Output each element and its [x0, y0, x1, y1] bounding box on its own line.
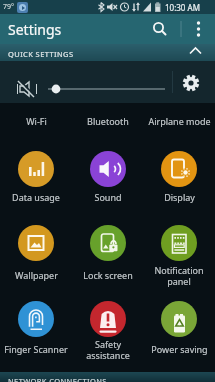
button[interactable]: Power saving [143, 301, 215, 362]
staticText: Wallpaper [15, 269, 58, 281]
staticText: Airplane mode [148, 115, 211, 127]
button[interactable]: Display [143, 151, 215, 210]
staticText: Data usage [12, 191, 60, 203]
staticText: Sound [94, 191, 122, 203]
button[interactable]: Wallpaper [0, 225, 72, 288]
button[interactable]: Sound [72, 151, 144, 210]
staticText: Lock screen [83, 269, 133, 281]
button[interactable]: Finger Scanner [0, 301, 72, 362]
staticText: Settings [8, 20, 62, 39]
button[interactable]: Data usage [0, 151, 72, 210]
staticText: Power saving [151, 343, 208, 355]
button[interactable] [186, 14, 210, 44]
button[interactable]: Wi-Fi [0, 110, 72, 132]
staticText: Finger Scanner [4, 343, 68, 355]
button[interactable]: Bluetooth [72, 110, 144, 132]
button[interactable]: NETWORK CONNECTIONS [0, 372, 215, 382]
button[interactable] [178, 70, 204, 96]
staticText: QUICK SETTINGS [8, 49, 74, 59]
staticText: NETWORK CONNECTIONS [8, 376, 107, 382]
button[interactable]: Safety assistance [72, 301, 144, 362]
staticText: Wi-Fi [26, 115, 47, 127]
button[interactable]: Lock screen [72, 225, 144, 288]
staticText: Bluetooth [87, 115, 129, 127]
button[interactable]: QUICK SETTINGS [0, 44, 215, 61]
button[interactable] [146, 14, 174, 44]
button[interactable]: Notification panel [143, 225, 215, 288]
staticText: Notification panel [154, 264, 204, 287]
staticText: 79° [3, 2, 15, 12]
staticText: Display [164, 191, 195, 203]
button[interactable]: Airplane mode [143, 110, 215, 132]
staticText: 10:30 AM [165, 2, 200, 13]
staticText: Safety assistance [86, 338, 130, 361]
